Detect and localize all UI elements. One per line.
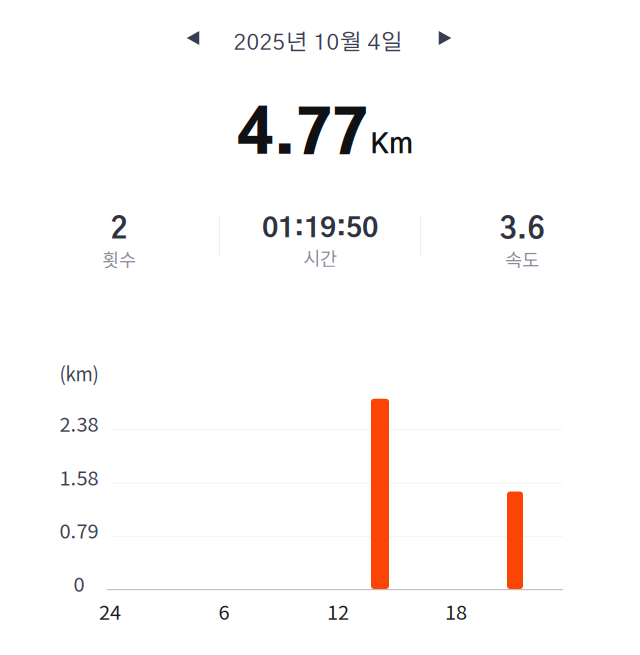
button[interactable]: Next day <box>423 16 467 60</box>
staticText: 24 <box>99 596 121 625</box>
staticText: 0.79 <box>59 515 98 544</box>
staticText: 속도 <box>505 245 539 272</box>
staticText: 18 <box>445 596 467 625</box>
staticText: 2 <box>110 215 127 244</box>
staticText: 0 <box>73 568 84 597</box>
staticText: Km <box>370 131 413 159</box>
button[interactable]: Previous day <box>171 16 215 60</box>
staticText: 2.38 <box>59 408 98 437</box>
staticText: (km) <box>59 359 98 386</box>
staticText: 시간 <box>303 244 337 271</box>
staticText: 12 <box>327 596 349 625</box>
staticText: 4.77 <box>237 106 368 166</box>
button[interactable]: 2025년 10월 4일 <box>198 21 438 65</box>
staticText: 1.58 <box>59 462 98 491</box>
staticText: 6 <box>218 596 229 625</box>
staticText: 횟수 <box>102 245 136 272</box>
staticText: 3.6 <box>499 215 544 244</box>
staticText: 01:19:50 <box>262 215 378 243</box>
staticText: 2025년 10월 4일 <box>233 32 402 54</box>
